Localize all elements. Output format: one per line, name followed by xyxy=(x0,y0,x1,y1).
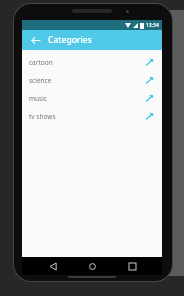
button[interactable]: Home xyxy=(83,257,101,275)
staticText: Categories xyxy=(48,34,92,46)
button[interactable]: science xyxy=(22,71,162,89)
button[interactable]: tv shows xyxy=(22,107,162,125)
button[interactable]: Select cartoon xyxy=(143,56,155,68)
button[interactable]: Navigate up xyxy=(28,33,42,47)
button[interactable]: Select tv shows xyxy=(143,110,155,122)
button[interactable]: Back xyxy=(44,257,62,275)
staticText: 13:34 xyxy=(146,22,159,29)
staticText: music xyxy=(29,94,143,103)
button[interactable]: music xyxy=(22,89,162,107)
button[interactable]: Select music xyxy=(143,92,155,104)
staticText: tv shows xyxy=(29,112,143,121)
button[interactable]: Select science xyxy=(143,74,155,86)
button[interactable]: cartoon xyxy=(22,53,162,71)
staticText: science xyxy=(29,76,143,85)
button[interactable]: Recent apps xyxy=(123,257,141,275)
staticText: cartoon xyxy=(29,58,143,67)
